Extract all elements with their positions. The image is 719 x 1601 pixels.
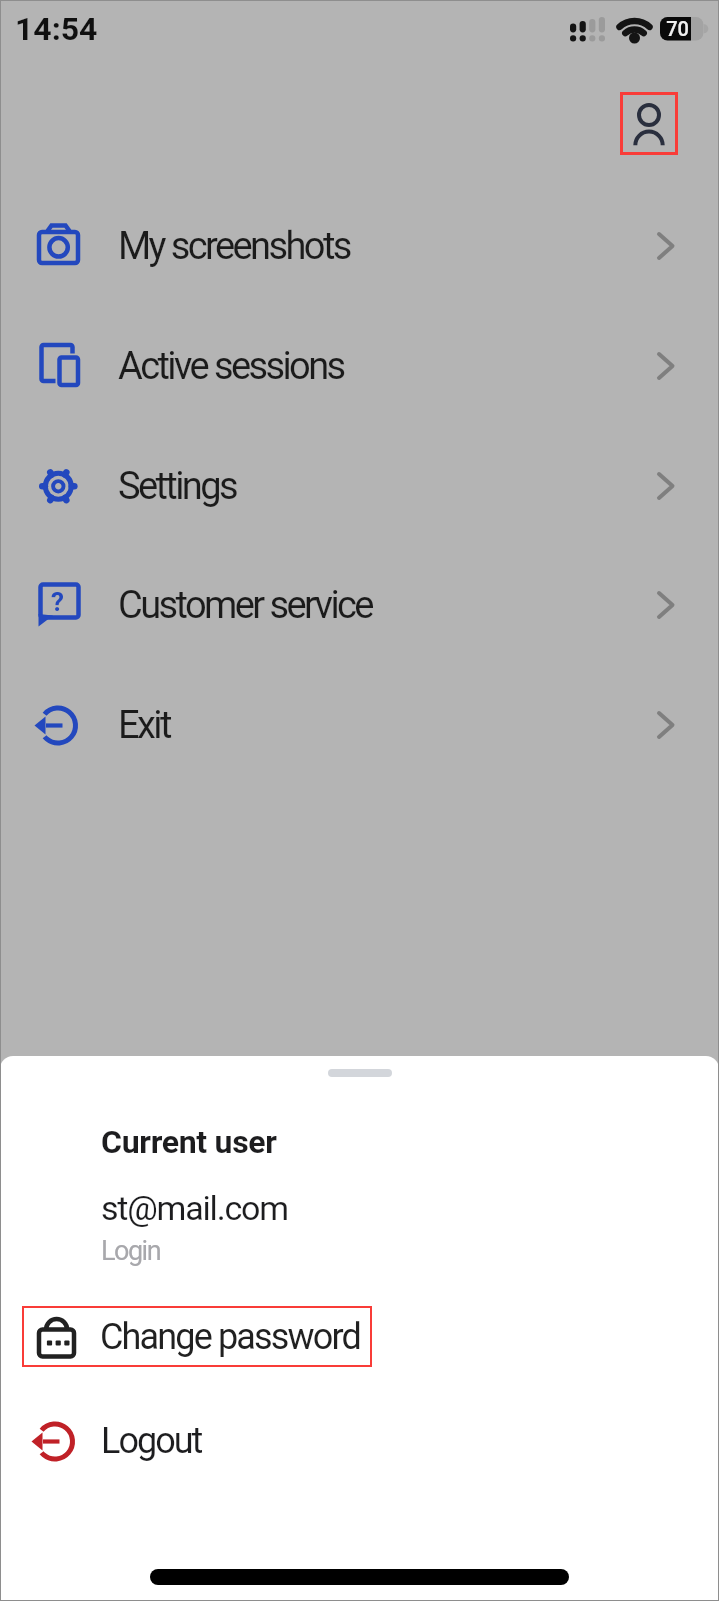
staticText: Current user [101, 1123, 277, 1161]
button[interactable]: ? [0, 560, 719, 650]
button[interactable]: Active sessions [0, 321, 719, 411]
button[interactable] [620, 92, 678, 155]
staticText: Active sessions [118, 344, 344, 389]
staticText: Settings [118, 464, 236, 509]
staticText: ? [51, 587, 64, 617]
staticText: Customer service [118, 583, 372, 628]
staticText: Exit [118, 703, 170, 748]
staticText: Change password [100, 1316, 360, 1358]
staticText: My screenshots [118, 224, 350, 269]
button[interactable]: Exit [0, 680, 719, 770]
staticText: Login [101, 1235, 161, 1267]
button[interactable]: My screenshots [0, 201, 719, 291]
staticText: 70 [666, 17, 689, 40]
button[interactable]: Settings [0, 441, 719, 531]
staticText: st@mail.com [101, 1188, 288, 1228]
button[interactable]: Logout [0, 1411, 719, 1471]
staticText: 14:54 [15, 10, 98, 48]
button[interactable]: Change password [22, 1306, 372, 1367]
staticText: Logout [101, 1420, 202, 1462]
